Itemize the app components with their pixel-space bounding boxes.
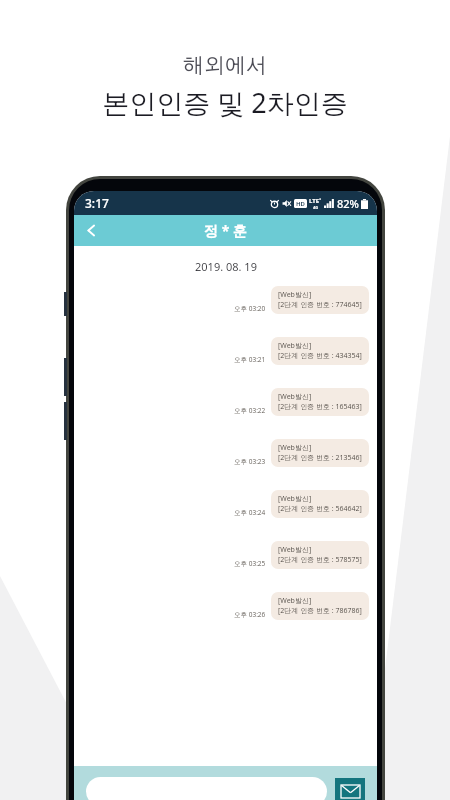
staticText: [Web발신]: [278, 596, 312, 606]
button[interactable]: [86, 777, 327, 800]
staticText: 오후 03:20: [234, 304, 266, 313]
staticText: 82%: [337, 196, 359, 211]
staticText: [Web발신]: [278, 443, 312, 453]
staticText: 오후 03:21: [234, 355, 266, 364]
button[interactable]: [Web발신]: [271, 439, 369, 467]
staticText: [Web발신]: [278, 290, 312, 300]
staticText: [2단계 인증 번호 : 434354]: [278, 351, 362, 361]
button[interactable]: [Web발신]: [271, 286, 369, 314]
staticText: 오후 03:22: [234, 406, 266, 415]
button[interactable]: [Web발신]: [271, 592, 369, 620]
button[interactable]: Back: [74, 215, 108, 246]
staticText: 오후 03:26: [234, 610, 266, 619]
staticText: [2단계 인증 번호 : 564642]: [278, 504, 362, 514]
staticText: 해외에서: [183, 52, 267, 78]
staticText: 오후 03:25: [234, 559, 266, 568]
staticText: [Web발신]: [278, 545, 312, 555]
staticText: 본인인증 및 2차인증: [102, 84, 348, 121]
staticText: LTE⁺: [309, 197, 322, 205]
staticText: [2단계 인증 번호 : 165463]: [278, 402, 362, 412]
staticText: [2단계 인증 번호 : 774645]: [278, 300, 362, 310]
staticText: [2단계 인증 번호 : 578575]: [278, 555, 362, 565]
staticText: 오후 03:23: [234, 457, 266, 466]
button[interactable]: [Web발신]: [271, 490, 369, 518]
staticText: 2019. 08. 19: [195, 259, 257, 274]
staticText: [Web발신]: [278, 494, 312, 504]
staticText: 정 * 훈: [204, 221, 247, 240]
staticText: [Web발신]: [278, 341, 312, 351]
button[interactable]: [Web발신]: [271, 388, 369, 416]
button[interactable]: [Web발신]: [271, 541, 369, 569]
button[interactable]: Send message: [335, 778, 365, 800]
staticText: [2단계 인증 번호 : 786786]: [278, 606, 362, 616]
staticText: 4G: [313, 205, 319, 210]
staticText: [Web발신]: [278, 392, 312, 402]
staticText: 오후 03:24: [234, 508, 266, 517]
staticText: HD: [296, 200, 305, 208]
staticText: 3:17: [85, 195, 109, 211]
staticText: [2단계 인증 번호 : 213546]: [278, 453, 362, 463]
button[interactable]: [Web발신]: [271, 337, 369, 365]
